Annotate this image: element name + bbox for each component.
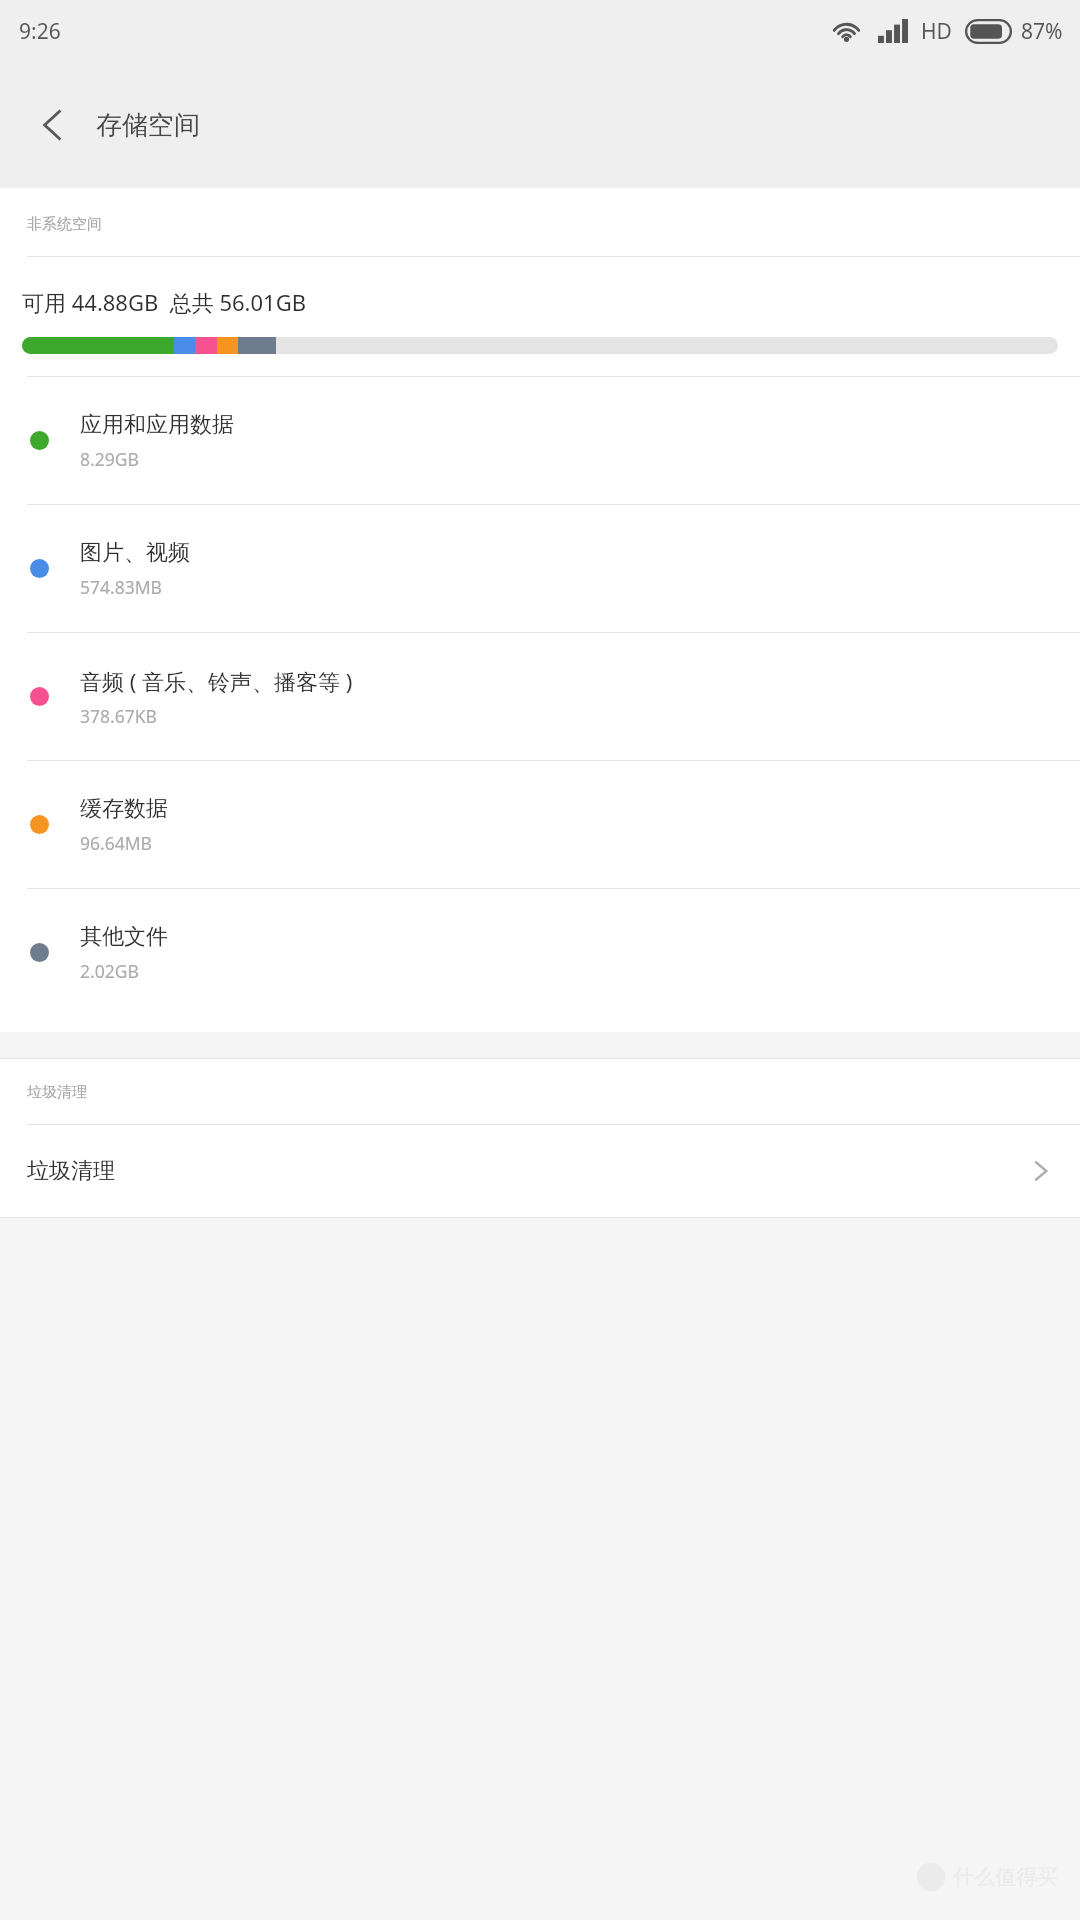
button[interactable]: 垃圾清理	[0, 1125, 1080, 1217]
staticText: 可用 44.88GB 总共 56.01GB	[22, 287, 306, 317]
staticText: 非系统空间	[27, 215, 102, 234]
button[interactable]: 音频 ( 音乐、铃声、播客等 )	[0, 633, 1080, 760]
staticText: 87%	[1021, 17, 1063, 46]
staticText: 音频 ( 音乐、铃声、播客等 )	[80, 666, 353, 696]
button[interactable]: 图片、视频	[0, 505, 1080, 632]
staticText: 9:26	[19, 17, 61, 46]
other: 打开垃圾清理	[1024, 1154, 1058, 1188]
staticText: 存储空间	[96, 109, 200, 142]
button[interactable]: 缓存数据	[0, 761, 1080, 888]
staticText: 96.64MB	[80, 831, 152, 855]
staticText: 8.29GB	[80, 447, 139, 471]
button[interactable]: 应用和应用数据	[0, 377, 1080, 504]
staticText: 什么值得买	[953, 1864, 1058, 1890]
staticText: 2.02GB	[80, 959, 139, 983]
staticText: 378.67KB	[80, 704, 157, 728]
staticText: 应用和应用数据	[80, 411, 234, 439]
staticText: 垃圾清理	[27, 1157, 115, 1185]
staticText: 其他文件	[80, 923, 168, 951]
staticText: 574.83MB	[80, 575, 162, 599]
button[interactable]: 返回	[24, 96, 82, 154]
button[interactable]: 其他文件	[0, 889, 1080, 1016]
staticText: HD	[921, 17, 952, 46]
staticText: 图片、视频	[80, 539, 190, 567]
staticText: 缓存数据	[80, 795, 168, 823]
staticText: 垃圾清理	[27, 1083, 87, 1102]
